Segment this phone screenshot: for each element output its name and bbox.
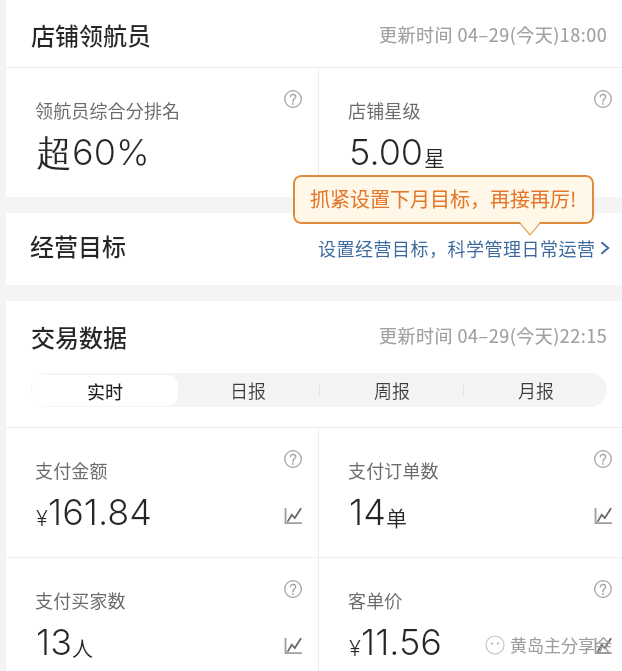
staticText: 5.00: [349, 130, 424, 174]
staticText: 13: [36, 620, 72, 664]
staticText: 161.84: [48, 490, 152, 534]
staticText: 抓紧设置下月目标，再接再厉!: [310, 184, 577, 213]
staticText: 交易数据: [31, 319, 127, 354]
staticText: 单: [386, 502, 407, 532]
button[interactable]: 实时: [32, 375, 178, 406]
button[interactable]: View trend chart: [594, 638, 612, 654]
staticText: 11.56: [361, 620, 442, 664]
staticText: 更新时间 04–29(今天)18:00: [379, 21, 608, 47]
staticText: 黄岛主分享会: [510, 632, 612, 657]
button[interactable]: 支付订单数: [319, 428, 622, 557]
button[interactable]: 日报: [176, 373, 320, 407]
staticText: 日报: [230, 377, 266, 403]
button[interactable]: View trend chart: [284, 638, 302, 654]
staticText: 经营目标: [30, 228, 126, 263]
button[interactable]: View trend chart: [284, 508, 302, 524]
staticText: 实时: [87, 378, 123, 404]
button[interactable]: Help: [284, 450, 302, 468]
staticText: 月报: [518, 377, 554, 403]
staticText: 更新时间 04–29(今天)22:15: [379, 322, 608, 348]
staticText: ¥: [36, 505, 48, 532]
button[interactable]: View trend chart: [594, 508, 612, 524]
staticText: 超60%: [36, 130, 150, 176]
button[interactable]: Help: [284, 90, 302, 108]
staticText: 支付金额: [35, 457, 108, 483]
button[interactable]: Help: [594, 90, 612, 108]
button[interactable]: 店铺星级: [319, 68, 622, 197]
button[interactable]: 客单价: [319, 558, 622, 671]
staticText: 支付订单数: [348, 457, 439, 483]
staticText: 店铺领航员: [31, 17, 151, 52]
staticText: 支付买家数: [35, 587, 126, 613]
button[interactable]: 抓紧设置下月目标，再接再厉!: [293, 175, 594, 224]
button[interactable]: Help: [594, 450, 612, 468]
button[interactable]: 支付买家数: [6, 558, 318, 671]
staticText: 店铺星级: [348, 97, 421, 123]
staticText: 周报: [374, 377, 410, 403]
button[interactable]: 支付金额: [6, 428, 318, 557]
button[interactable]: 设置经营目标，科学管理日常运营: [314, 229, 613, 267]
staticText: 14: [349, 490, 386, 534]
button[interactable]: 领航员综合分排名: [6, 68, 318, 197]
staticText: 星: [424, 142, 445, 172]
staticText: ¥: [349, 635, 361, 662]
staticText: 领航员综合分排名: [35, 97, 181, 123]
button[interactable]: 周报: [320, 373, 464, 407]
staticText: 人: [72, 632, 93, 662]
staticText: 客单价: [348, 587, 403, 613]
staticText: 设置经营目标，科学管理日常运营: [318, 235, 596, 261]
button[interactable]: 月报: [464, 373, 607, 407]
button[interactable]: Help: [284, 580, 302, 598]
button[interactable]: Help: [594, 580, 612, 598]
